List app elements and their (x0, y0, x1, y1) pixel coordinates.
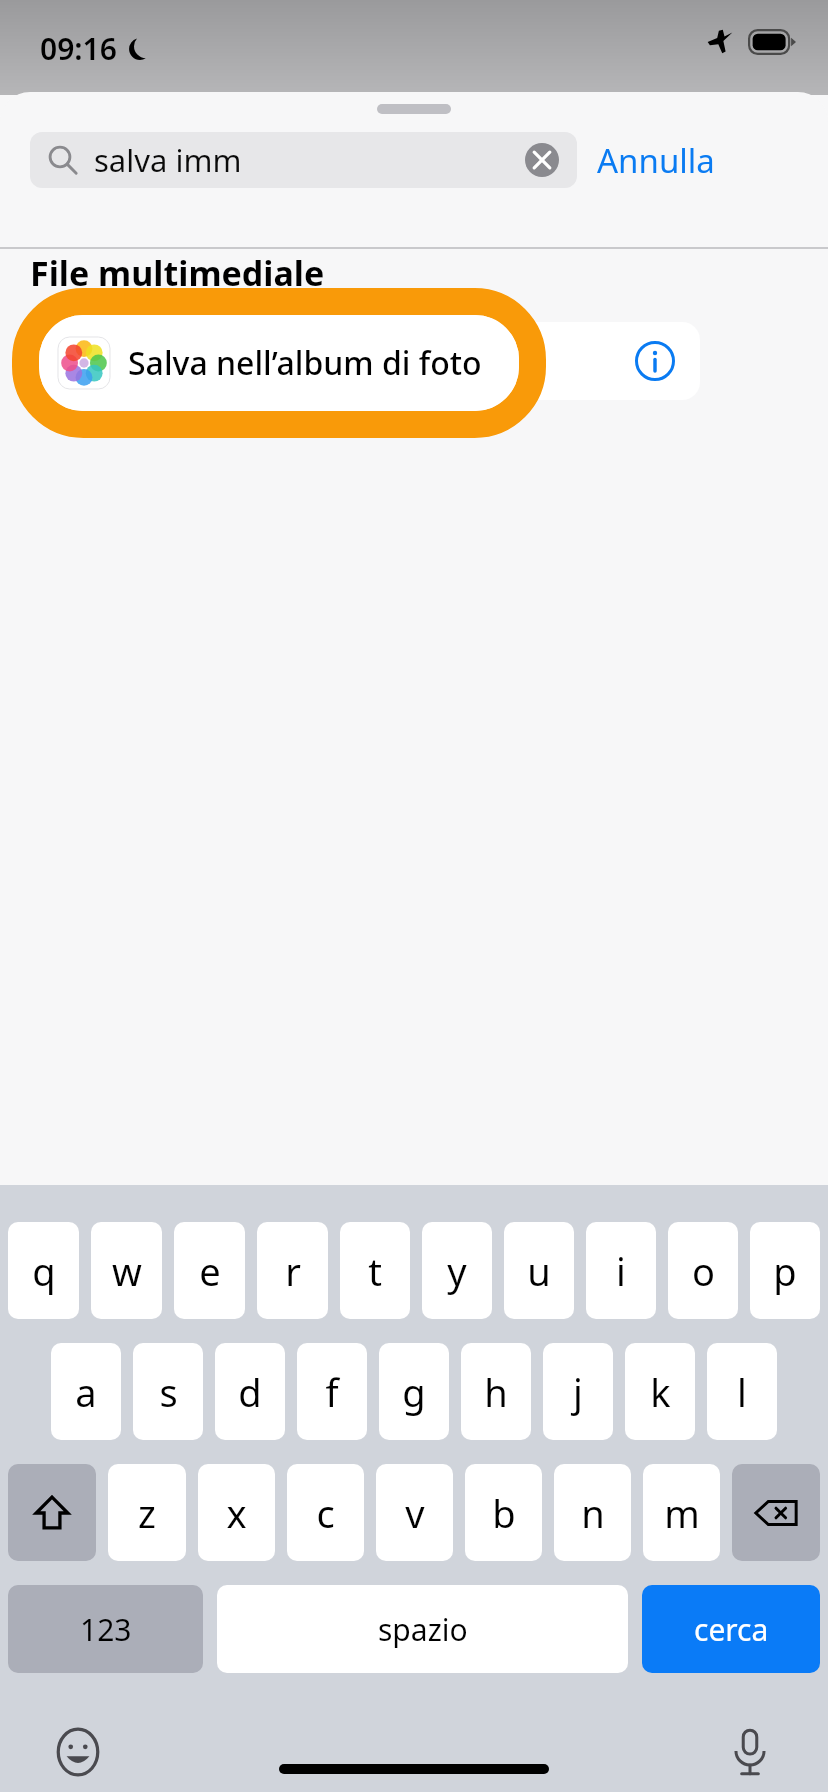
button[interactable]: e (174, 1222, 245, 1319)
button[interactable]: g (379, 1343, 449, 1440)
staticText: o (692, 1245, 715, 1297)
staticText: File multimediale (30, 250, 325, 296)
button[interactable]: salva imm (30, 132, 577, 188)
button[interactable]: c (287, 1464, 364, 1561)
button[interactable]: o (668, 1222, 738, 1319)
staticText: h (484, 1366, 508, 1418)
button[interactable]: l (707, 1343, 777, 1440)
button[interactable]: Dettatura (718, 1720, 782, 1784)
button[interactable]: d (215, 1343, 285, 1440)
staticText: 09:16 (40, 28, 117, 69)
staticText: x (226, 1487, 247, 1539)
staticText: p (773, 1245, 797, 1297)
staticText: d (238, 1366, 262, 1418)
staticText: n (581, 1487, 605, 1539)
staticText: 123 (80, 1609, 132, 1650)
staticText: salva imm (94, 139, 242, 181)
button[interactable]: Backspace (732, 1464, 820, 1561)
staticText: m (664, 1487, 700, 1539)
button[interactable]: x (198, 1464, 275, 1561)
button[interactable]: b (465, 1464, 542, 1561)
button[interactable]: s (133, 1343, 203, 1440)
staticText: f (325, 1366, 339, 1418)
button[interactable]: Salva nell’album di foto (30, 322, 700, 400)
button[interactable]: r (257, 1222, 328, 1319)
button[interactable]: i (586, 1222, 656, 1319)
staticText: v (405, 1487, 425, 1539)
staticText: Salva nell’album di foto (128, 341, 482, 385)
staticText: a (75, 1366, 97, 1418)
staticText: s (159, 1366, 178, 1418)
staticText: Annulla (597, 138, 715, 183)
button[interactable]: k (625, 1343, 695, 1440)
button[interactable]: 123 (8, 1585, 203, 1673)
staticText: Salva nell’album di foto (116, 339, 470, 383)
button[interactable]: n (554, 1464, 631, 1561)
button[interactable]: v (376, 1464, 453, 1561)
staticText: z (138, 1487, 156, 1539)
staticText: k (650, 1366, 671, 1418)
button[interactable]: z (108, 1464, 186, 1561)
button[interactable]: f (297, 1343, 367, 1440)
button[interactable]: t (340, 1222, 410, 1319)
staticText: w (112, 1245, 142, 1297)
button[interactable]: Informazioni (624, 330, 686, 392)
staticText: u (527, 1245, 551, 1297)
button[interactable]: p (750, 1222, 820, 1319)
button[interactable]: q (8, 1222, 79, 1319)
button[interactable]: h (461, 1343, 531, 1440)
button[interactable]: cerca (642, 1585, 820, 1673)
button[interactable]: Cancella testo (519, 137, 565, 183)
staticText: spazio (378, 1609, 468, 1650)
staticText: r (285, 1245, 301, 1297)
button[interactable]: a (51, 1343, 121, 1440)
staticText: t (368, 1245, 382, 1297)
staticText: l (737, 1366, 747, 1418)
staticText: e (199, 1245, 221, 1297)
staticText: j (573, 1366, 583, 1418)
button[interactable]: Annulla (597, 132, 715, 188)
button[interactable]: Salva nell’album di foto (12, 288, 546, 438)
staticText: b (492, 1487, 516, 1539)
button[interactable]: Emoji (46, 1720, 110, 1784)
button[interactable]: y (422, 1222, 492, 1319)
button[interactable]: u (504, 1222, 574, 1319)
button[interactable]: spazio (217, 1585, 628, 1673)
staticText: q (32, 1245, 56, 1297)
button[interactable]: j (543, 1343, 613, 1440)
staticText: g (402, 1366, 426, 1418)
button[interactable]: m (643, 1464, 720, 1561)
button[interactable]: Maiuscole (8, 1464, 96, 1561)
button[interactable]: w (91, 1222, 162, 1319)
staticText: y (447, 1245, 467, 1297)
staticText: cerca (694, 1609, 769, 1650)
staticText: i (616, 1245, 626, 1297)
staticText: c (316, 1487, 335, 1539)
